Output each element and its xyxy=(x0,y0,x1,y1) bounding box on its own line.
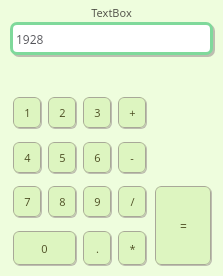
button[interactable]: 7 xyxy=(13,186,41,217)
button[interactable]: 8 xyxy=(48,186,76,217)
staticText: 8 xyxy=(59,194,66,209)
button[interactable]: 6 xyxy=(83,142,111,173)
staticText: + xyxy=(129,105,136,120)
staticText: - xyxy=(130,150,134,165)
button[interactable]: - xyxy=(118,142,146,173)
button[interactable]: 1928 xyxy=(13,25,210,52)
button[interactable]: 3 xyxy=(83,97,111,128)
button[interactable]: * xyxy=(118,231,146,265)
button[interactable]: . xyxy=(83,231,111,265)
staticText: = xyxy=(180,218,187,234)
staticText: 1928 xyxy=(16,31,44,47)
staticText: 4 xyxy=(24,150,31,165)
button[interactable]: = xyxy=(155,186,211,265)
button[interactable]: 9 xyxy=(83,186,111,217)
staticText: . xyxy=(96,241,99,256)
button[interactable]: 2 xyxy=(48,97,76,128)
staticText: 3 xyxy=(94,105,101,120)
staticText: 1 xyxy=(24,105,31,120)
staticText: 0 xyxy=(41,241,48,256)
staticText: TextBox xyxy=(91,5,132,20)
staticText: 6 xyxy=(94,150,101,165)
button[interactable]: 1 xyxy=(13,97,41,128)
button[interactable]: 5 xyxy=(48,142,76,173)
staticText: / xyxy=(130,194,135,209)
staticText: 2 xyxy=(59,105,66,120)
button[interactable]: 4 xyxy=(13,142,41,173)
staticText: * xyxy=(129,241,136,256)
staticText: 5 xyxy=(59,150,66,165)
button[interactable]: / xyxy=(118,186,146,217)
button[interactable]: + xyxy=(118,97,146,128)
staticText: 9 xyxy=(94,194,101,209)
button[interactable]: 0 xyxy=(13,231,76,265)
staticText: 7 xyxy=(24,194,31,209)
